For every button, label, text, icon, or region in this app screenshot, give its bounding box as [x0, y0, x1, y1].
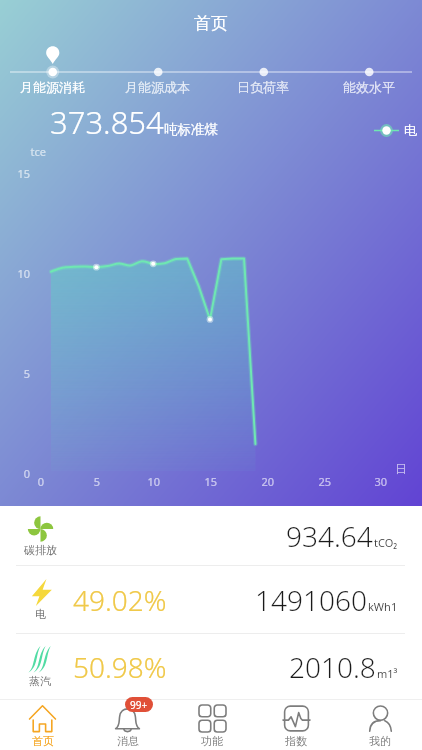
staticText: 日 — [395, 461, 407, 476]
button[interactable]: 我的 — [338, 700, 422, 750]
staticText: 月能源成本 — [125, 79, 190, 95]
button[interactable]: 能效水平 — [316, 79, 422, 99]
staticText: 指数 — [285, 734, 307, 748]
staticText: 日负荷率 — [237, 79, 289, 95]
button[interactable]: 日负荷率 — [210, 79, 316, 99]
staticText: 电 — [404, 122, 417, 138]
staticText: 10 — [0, 266, 30, 281]
staticText: 30 — [374, 474, 387, 489]
staticText: 1491060 — [255, 581, 367, 619]
button[interactable]: 蒸汽 — [0, 634, 422, 699]
staticText: 99+ — [130, 698, 148, 712]
staticText: 蒸汽 — [29, 674, 51, 688]
staticText: 25 — [318, 474, 331, 489]
staticText: 934.64 — [286, 517, 373, 555]
button[interactable]: 功能 — [170, 700, 254, 750]
button[interactable]: 电 — [0, 566, 422, 633]
staticText: m1³ — [377, 666, 398, 681]
staticText: 吨标准煤 — [164, 121, 218, 138]
button[interactable]: 99+ — [85, 700, 170, 750]
staticText: 能效水平 — [343, 79, 395, 95]
button[interactable]: 月能源成本 — [105, 79, 210, 99]
staticText: 0 — [37, 474, 44, 489]
staticText: 功能 — [201, 734, 223, 748]
staticText: 20 — [261, 474, 274, 489]
staticText: tce — [0, 144, 46, 159]
staticText: 2010.8 — [289, 648, 376, 686]
staticText: kWh1 — [368, 599, 398, 614]
staticText: 首页 — [32, 734, 54, 748]
staticText: 0 — [0, 466, 30, 481]
staticText: 月能源消耗 — [20, 79, 85, 95]
staticText: 49.02% — [73, 581, 167, 619]
button[interactable]: 碳排放 — [0, 506, 422, 565]
staticText: 5 — [0, 366, 30, 381]
staticText: 碳排放 — [24, 543, 57, 557]
staticText: tCO₂ — [374, 535, 398, 550]
staticText: 电 — [35, 607, 46, 621]
button[interactable]: 月能源消耗 — [0, 79, 105, 99]
button[interactable]: 首页 — [0, 700, 85, 750]
staticText: 我的 — [369, 734, 391, 748]
staticText: 373.854 — [50, 101, 164, 143]
staticText: 15 — [0, 166, 30, 181]
staticText: 首页 — [194, 13, 228, 34]
staticText: 15 — [204, 474, 217, 489]
staticText: 50.98% — [73, 648, 167, 686]
staticText: 消息 — [117, 734, 139, 748]
staticText: 10 — [147, 474, 160, 489]
staticText: 5 — [93, 474, 100, 489]
button[interactable]: 指数 — [254, 700, 338, 750]
